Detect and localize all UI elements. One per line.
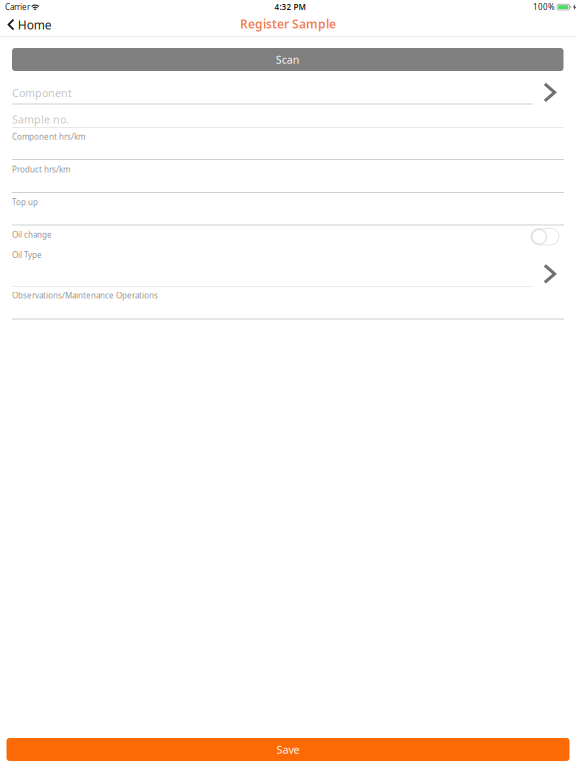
staticText: Top up: [12, 197, 38, 207]
staticText: Scan: [276, 52, 300, 67]
staticText: Component: [12, 86, 72, 100]
staticText: 4:32 PM: [274, 1, 305, 12]
staticText: Register Sample: [240, 16, 336, 32]
button[interactable]: Home: [0, 12, 62, 37]
staticText: Sample no.: [12, 112, 69, 126]
button[interactable]: Oil change: [531, 228, 559, 245]
staticText: 100%: [533, 1, 555, 12]
staticText: Component hrs/km: [12, 131, 85, 142]
staticText: Oil Type: [12, 250, 42, 260]
staticText: Home: [18, 17, 52, 33]
staticText: Carrier: [5, 1, 30, 12]
button[interactable]: Save: [6, 738, 569, 761]
staticText: Oil change: [12, 229, 52, 240]
button[interactable]: Select component: [540, 79, 559, 105]
staticText: Observations/Maintenance Operations: [12, 290, 158, 301]
button[interactable]: Select oil type: [540, 261, 559, 287]
button[interactable]: Scan: [12, 48, 563, 71]
staticText: Save: [276, 742, 299, 757]
staticText: Product hrs/km: [12, 164, 70, 175]
